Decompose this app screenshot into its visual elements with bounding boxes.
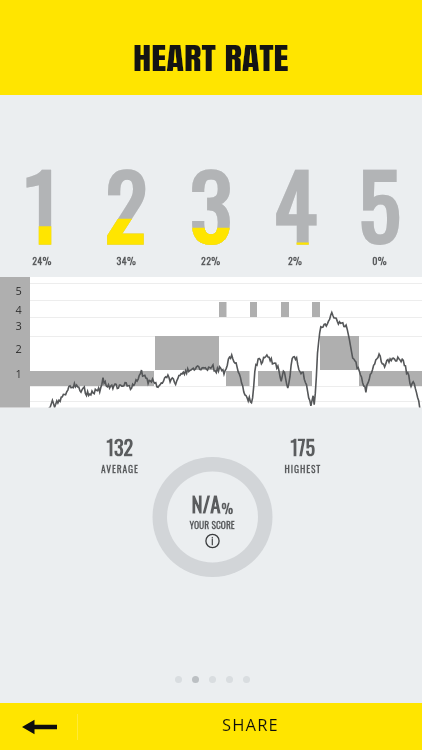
button[interactable] bbox=[0, 0, 422, 95]
staticText: SHARE bbox=[222, 713, 279, 735]
button[interactable]: SHARE bbox=[78, 703, 422, 750]
button[interactable]: Back bbox=[0, 703, 77, 750]
